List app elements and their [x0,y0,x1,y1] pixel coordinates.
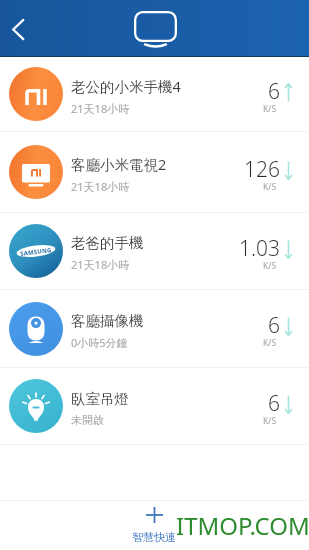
button[interactable]: 智慧快連 [126,504,182,547]
button[interactable]: 客廳攝像機 [0,290,309,367]
button[interactable]: 客廳小米電視2 [0,132,309,212]
staticText: K/S [263,103,277,115]
staticText: K/S [263,337,277,349]
staticText: 6 [268,311,280,340]
staticText: 智慧快連 [132,530,176,544]
staticText: ITMOP.COM [176,509,309,542]
staticText: 21天18小時 [71,101,130,116]
staticText: K/S [263,260,277,272]
button[interactable]: 老公的小米手機4 [0,57,309,131]
staticText: 6 [268,389,280,418]
staticText: 老爸的手機 [71,234,144,252]
staticText: 6 [268,77,280,106]
staticText: K/S [263,415,277,427]
staticText: 客廳小米電視2 [71,154,167,174]
staticText: SAMSUNG [20,246,52,258]
button[interactable]: Back [0,8,39,50]
staticText: 21天18小時 [71,257,130,272]
staticText: 0小時5分鐘 [71,335,128,350]
staticText: 臥室吊燈 [71,390,129,408]
staticText: 未開啟 [71,413,104,427]
staticText: K/S [263,181,277,193]
button[interactable]: 臥室吊燈 [0,368,309,444]
staticText: 126 [244,155,280,184]
button[interactable]: SAMSUNG [0,213,309,289]
staticText: 1.03 [238,234,280,263]
staticText: 客廳攝像機 [71,312,144,330]
staticText: 老公的小米手機4 [71,76,181,96]
staticText: 21天18小時 [71,179,130,194]
